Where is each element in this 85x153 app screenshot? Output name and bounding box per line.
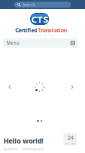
staticText: by admin · Uncategorized bbox=[3, 147, 43, 151]
staticText: S E R V I C E S bbox=[29, 33, 52, 36]
button[interactable]: Menu bbox=[3, 38, 78, 48]
staticText: DEC 2023 bbox=[65, 142, 75, 145]
staticText: CTS bbox=[31, 12, 48, 26]
button[interactable]: Previous slide bbox=[9, 85, 11, 89]
staticText: Certified bbox=[15, 27, 37, 34]
button[interactable]: Slide 2 bbox=[40, 120, 42, 122]
button[interactable]: Search bbox=[14, 2, 71, 8]
button[interactable]: Next slide bbox=[71, 85, 74, 89]
button[interactable]: December 24, 2023 bbox=[63, 133, 77, 145]
staticText: 24 bbox=[67, 133, 73, 141]
staticText: Search bbox=[22, 2, 34, 7]
staticText: Menu bbox=[6, 40, 19, 46]
button[interactable]: Hello world! bbox=[3, 136, 58, 151]
button[interactable]: Slide 1 bbox=[37, 120, 39, 122]
staticText: Hello world! bbox=[3, 136, 43, 145]
staticText: Translation bbox=[38, 27, 67, 34]
